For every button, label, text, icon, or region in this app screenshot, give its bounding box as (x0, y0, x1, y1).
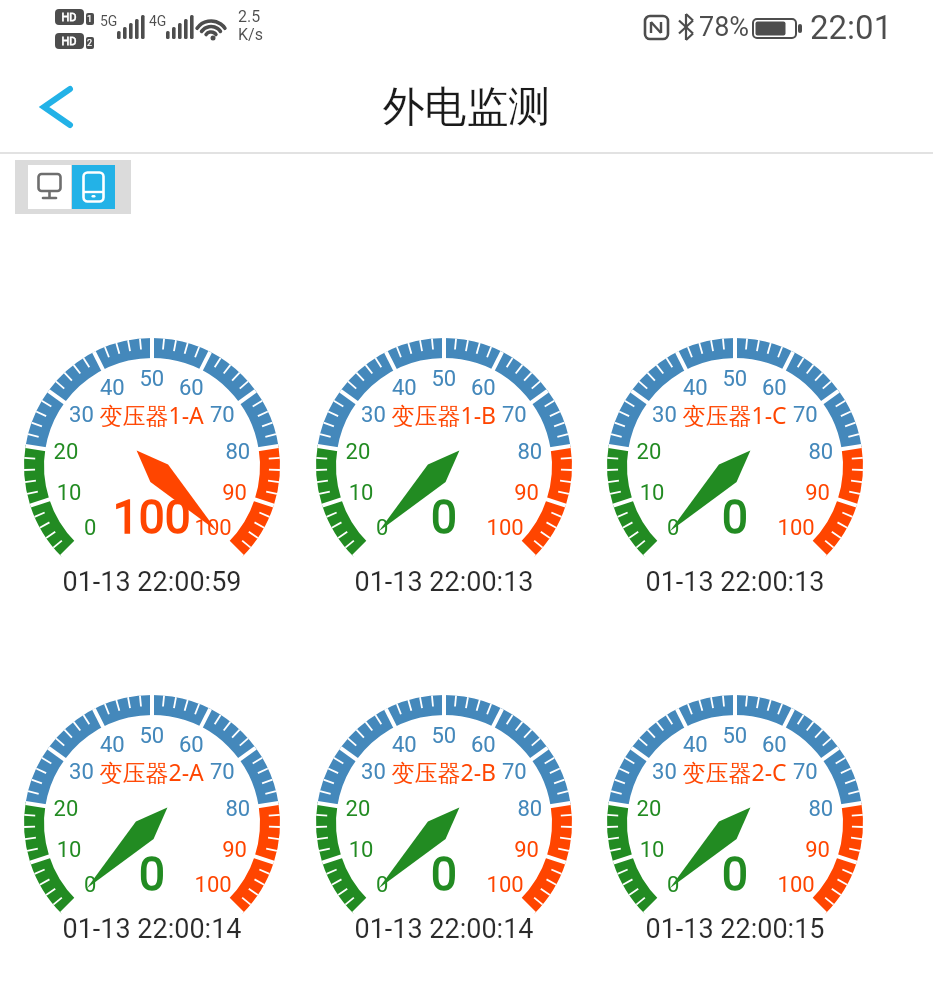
button[interactable] (28, 165, 71, 209)
button[interactable] (20, 77, 84, 137)
button[interactable] (72, 165, 115, 209)
